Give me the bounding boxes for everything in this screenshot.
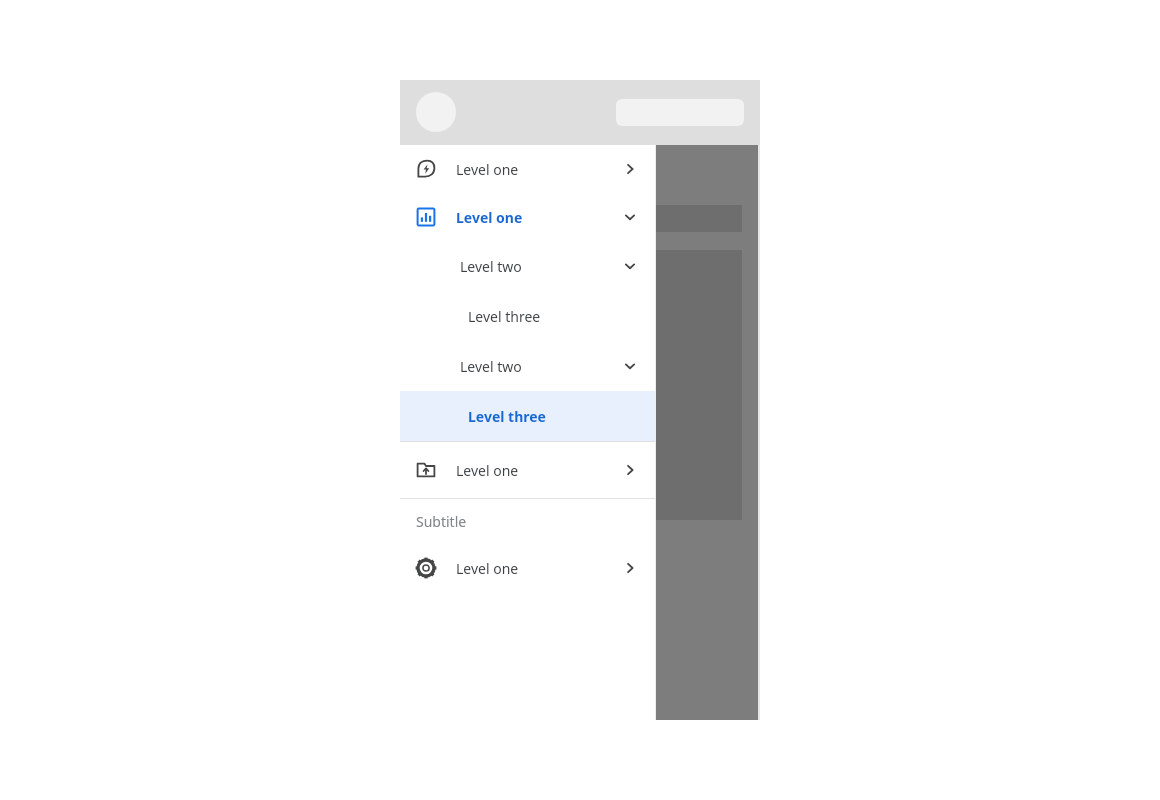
button[interactable]: Level one — [400, 442, 656, 498]
other: Collapse — [622, 258, 638, 274]
button[interactable]: Level two — [400, 241, 656, 291]
other: Collapse — [622, 358, 638, 374]
staticText: Level one — [456, 208, 523, 227]
button[interactable]: Level one — [400, 544, 656, 592]
other: Expand — [622, 560, 638, 576]
staticText: Level two — [460, 357, 522, 376]
staticText: Subtitle — [416, 512, 467, 531]
button[interactable]: Account — [416, 92, 456, 132]
other: Expand — [622, 161, 638, 177]
button[interactable]: Level one — [400, 193, 656, 241]
button[interactable]: Level three — [400, 291, 656, 341]
staticText: Level three — [468, 307, 541, 326]
other: Collapse — [622, 209, 638, 225]
staticText: Level three — [468, 407, 546, 426]
staticText: Level one — [456, 160, 519, 179]
button[interactable]: Level one — [400, 145, 656, 193]
staticText: Level one — [456, 559, 519, 578]
staticText: Level one — [456, 461, 519, 480]
button[interactable]: Level two — [400, 341, 656, 391]
staticText: Level two — [460, 257, 522, 276]
button[interactable]: Level three — [400, 391, 656, 441]
other: Expand — [622, 462, 638, 478]
